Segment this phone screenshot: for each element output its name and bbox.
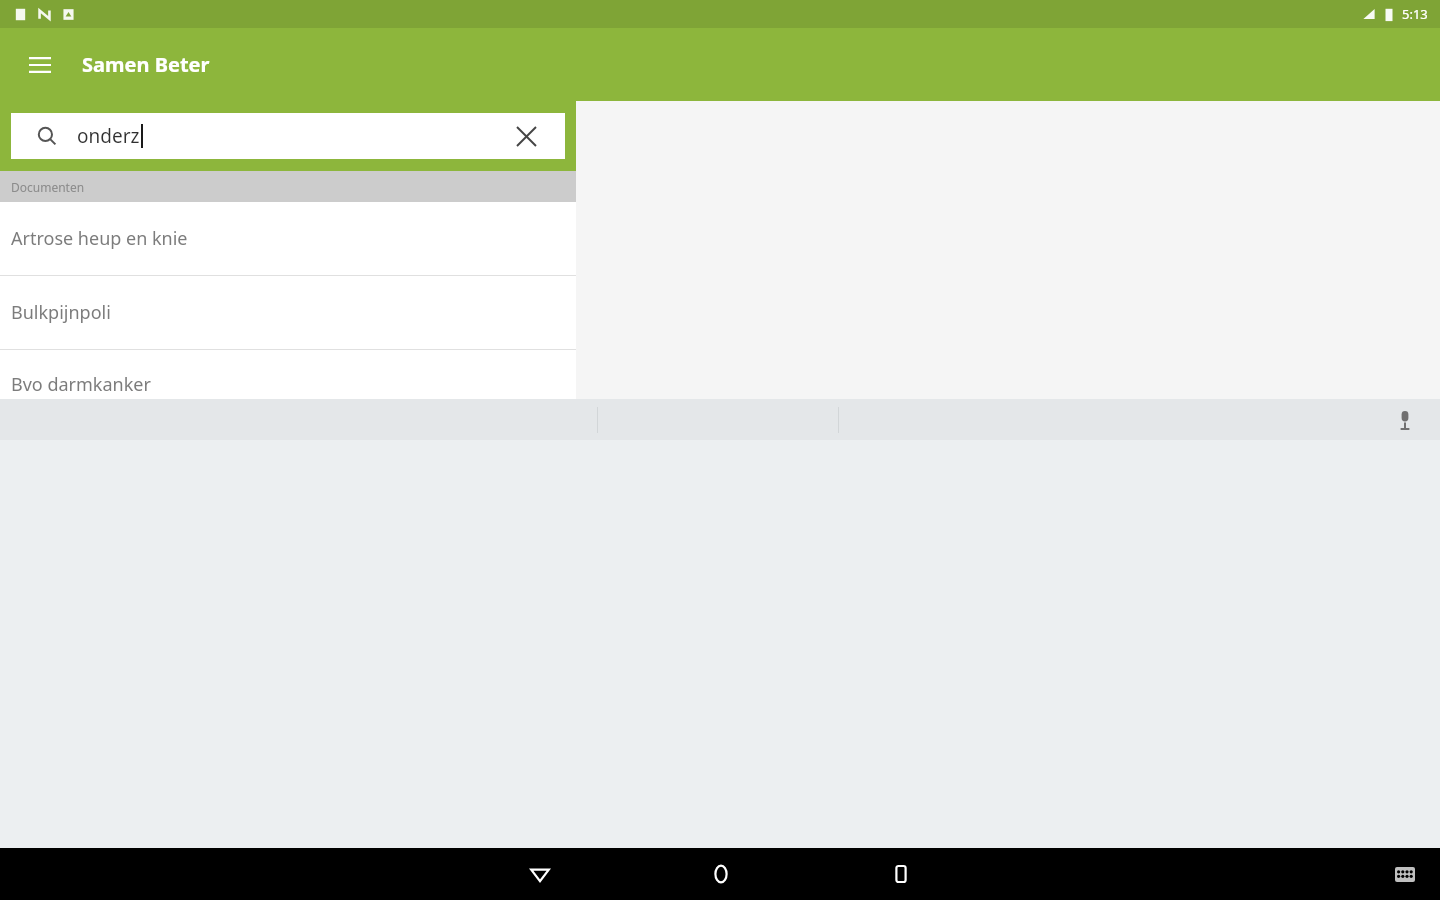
button[interactable]: Open navigation menu [18,43,62,87]
button[interactable]: onderz [11,113,565,159]
staticText: Bulkpijnpoli [11,300,111,325]
staticText: Bvo darmkanker [11,372,151,397]
button[interactable]: Artrose heup en knie [0,202,576,275]
button[interactable]: Bulkpijnpoli [0,276,576,349]
button[interactable]: Clear search [507,117,545,155]
staticText: onderz [77,123,140,149]
button[interactable]: Recent apps [866,848,936,900]
button[interactable]: Voice input [1386,401,1424,439]
button[interactable]: Home [686,848,756,900]
button[interactable]: Bvo darmkanker [0,350,576,418]
staticText: 5:13 [1402,5,1428,23]
staticText: Samen Beter [82,51,210,78]
staticText: Artrose heup en knie [11,226,188,251]
staticText: Documenten [11,179,85,195]
button[interactable]: Back [505,848,575,900]
button[interactable]: Switch keyboard [1380,849,1430,899]
